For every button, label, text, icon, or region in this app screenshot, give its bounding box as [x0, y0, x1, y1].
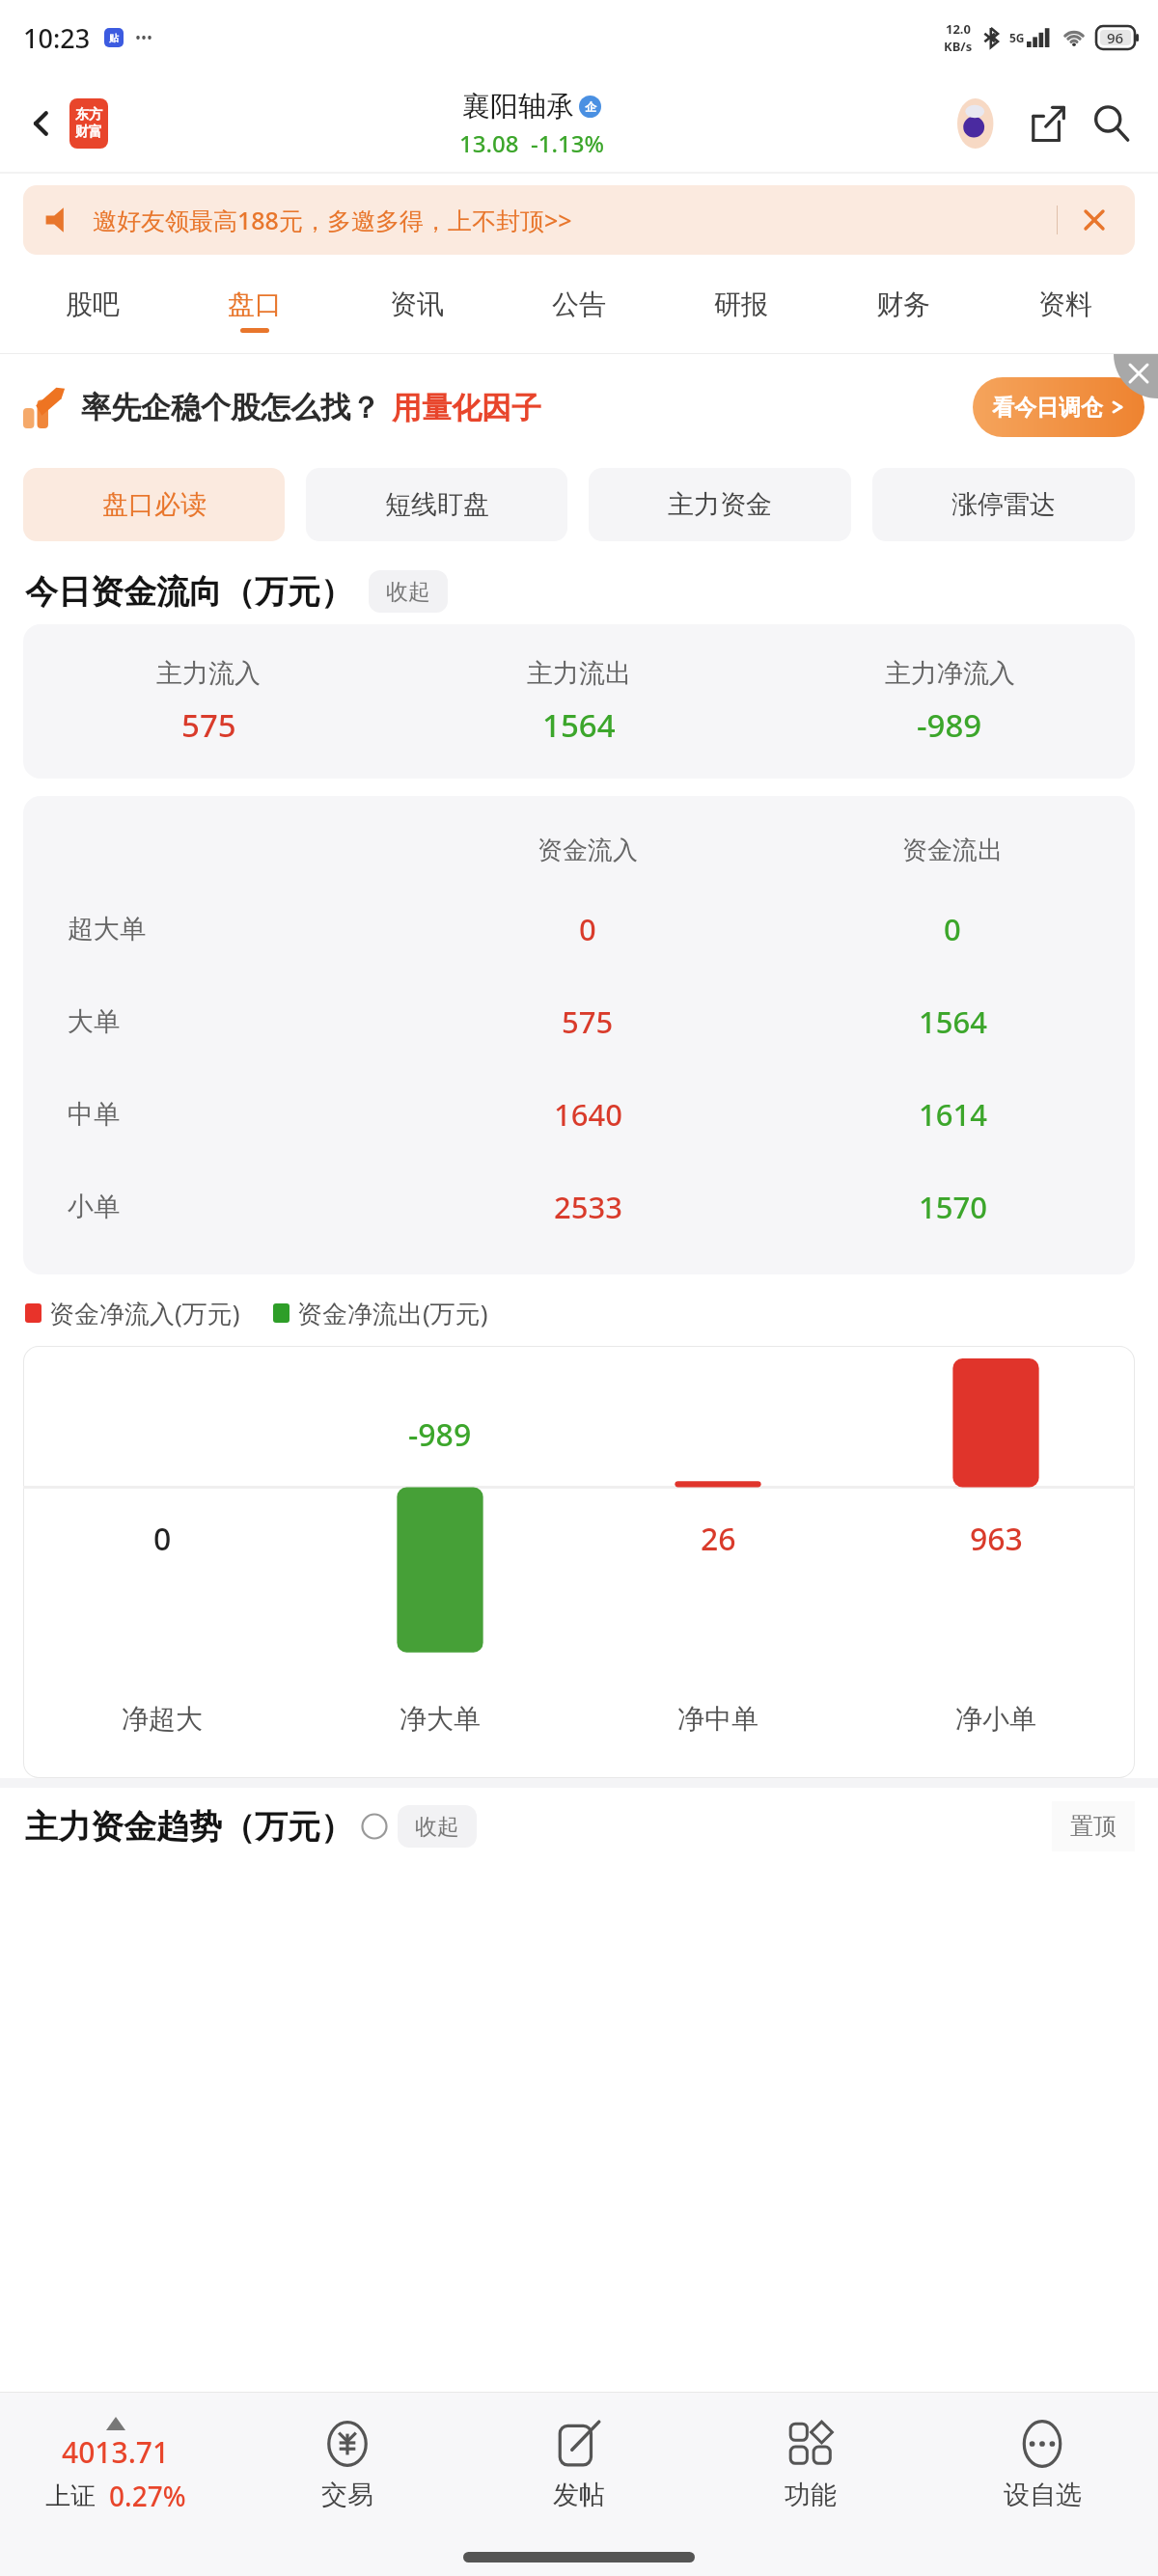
staticText: 小单 [68, 1191, 120, 1223]
button[interactable]: 分享 [1021, 96, 1075, 151]
button[interactable]: 客服 [955, 96, 1009, 151]
button[interactable]: 公告 [498, 266, 660, 353]
button[interactable]: 资金流入 [23, 796, 1135, 1274]
staticText: 资料 [1038, 288, 1092, 321]
staticText: 主力流出 [527, 657, 631, 690]
staticText: 置顶 [1070, 1812, 1117, 1841]
staticText: 公告 [552, 288, 606, 321]
button[interactable]: 涨停雷达 [872, 468, 1135, 541]
staticText: 东方 [75, 106, 102, 123]
staticText: 盘口必读 [102, 488, 207, 521]
button[interactable]: 设自选 [926, 2393, 1158, 2537]
staticText: 用量化因子 [392, 389, 541, 426]
staticText: 资金净流入(万元) [49, 1296, 240, 1330]
staticText: 963 [970, 1518, 1023, 1560]
staticText: 资金流入 [538, 835, 638, 866]
staticText: 0 [944, 909, 961, 949]
staticText: 5G [1009, 30, 1025, 45]
staticText: -989 [917, 703, 982, 747]
staticText: 超大单 [68, 913, 146, 945]
staticText: 邀好友领最高188元，多邀多得，上不封顶>> [93, 204, 572, 236]
staticText: 96 [1107, 28, 1124, 47]
staticText: 收起 [415, 1813, 459, 1841]
button[interactable]: 0 [23, 1346, 1135, 1778]
staticText: 0 [579, 909, 596, 949]
staticText: 资金流出 [902, 835, 1003, 866]
staticText: 财务 [876, 288, 930, 321]
button[interactable]: 股吧 [12, 266, 174, 353]
button[interactable]: 盘口 [174, 266, 336, 353]
button[interactable]: 交易 [232, 2393, 463, 2537]
staticText: 1564 [919, 1001, 987, 1042]
staticText: 率先企稳个股怎么找？ [81, 389, 380, 426]
staticText: 资金净流出(万元) [297, 1296, 488, 1330]
staticText: 中单 [68, 1098, 120, 1131]
staticText: 收起 [386, 578, 430, 606]
staticText: 575 [562, 1001, 614, 1042]
staticText: 0 [153, 1518, 172, 1560]
button[interactable]: 盘口必读 [23, 468, 285, 541]
button[interactable]: 资讯 [336, 266, 498, 353]
button[interactable]: 资料 [984, 266, 1146, 353]
staticText: 盘口 [228, 288, 282, 321]
staticText: 发帖 [553, 2479, 605, 2511]
button[interactable]: 收起 [398, 1805, 477, 1848]
button[interactable]: 返回 [19, 101, 64, 146]
staticText: 2533 [554, 1187, 622, 1227]
staticText: 1614 [919, 1094, 987, 1135]
button[interactable]: 4013.71 [0, 2417, 232, 2514]
button[interactable]: 发帖 [463, 2393, 695, 2537]
staticText: 0.27% [109, 2478, 186, 2514]
staticText: -989 [408, 1413, 472, 1456]
staticText: 主力资金 [668, 488, 772, 521]
staticText: 主力净流入 [885, 657, 1015, 690]
staticText: 1564 [542, 703, 616, 747]
button[interactable]: 研报 [660, 266, 822, 353]
staticText: 研报 [714, 288, 768, 321]
button[interactable]: 搜索 [1085, 96, 1139, 151]
staticText: 净大单 [400, 1702, 481, 1736]
staticText: 主力资金趋势（万元） [25, 1806, 353, 1848]
staticText: 襄阳轴承 [462, 89, 574, 124]
staticText: 短线盯盘 [385, 488, 489, 521]
button[interactable]: 财务 [822, 266, 984, 353]
staticText: 贴 [109, 32, 119, 44]
staticText: 净超大 [122, 1702, 203, 1736]
button[interactable]: 关闭广告 [1114, 354, 1158, 398]
staticText: 大单 [68, 1005, 120, 1038]
button[interactable]: 主力资金 [589, 468, 851, 541]
button[interactable]: 置顶 [1052, 1801, 1135, 1851]
staticText: 看今日调仓 [992, 394, 1103, 422]
staticText: 10:23 [23, 20, 91, 56]
staticText: KB/s [944, 38, 973, 55]
staticText: 主力流入 [156, 657, 261, 690]
staticText: 交易 [321, 2479, 373, 2511]
staticText: 净小单 [955, 1702, 1036, 1736]
button[interactable]: 邀好友领最高188元，多邀多得，上不封顶>> [23, 185, 1135, 255]
staticText: -1.13% [531, 127, 604, 159]
staticText: 4013.71 [62, 2432, 170, 2472]
staticText: 功能 [785, 2479, 837, 2511]
staticText: 股吧 [66, 288, 120, 321]
button[interactable]: 主力流入 [23, 624, 1135, 779]
staticText: 财富 [75, 123, 102, 141]
staticText: 企 [585, 99, 596, 114]
button[interactable]: 收起 [369, 570, 448, 613]
button[interactable]: 东方财富 [69, 98, 108, 149]
button[interactable]: 短线盯盘 [306, 468, 567, 541]
staticText: 575 [181, 703, 236, 747]
button[interactable]: 功能 [695, 2393, 926, 2537]
button[interactable]: 看今日调仓 [973, 377, 1144, 437]
staticText: ••• [135, 27, 153, 48]
button[interactable]: 关闭 [1075, 201, 1114, 239]
staticText: 上证 [45, 2480, 96, 2512]
staticText: 今日资金流向（万元） [25, 571, 353, 613]
staticText: 1640 [554, 1094, 622, 1135]
staticText: 资讯 [390, 288, 444, 321]
staticText: 1570 [919, 1187, 987, 1227]
staticText: 设自选 [1004, 2479, 1082, 2511]
staticText: 净中单 [677, 1702, 758, 1736]
staticText: 涨停雷达 [951, 488, 1056, 521]
staticText: 13.08 [459, 127, 519, 159]
staticText: 26 [701, 1518, 736, 1560]
